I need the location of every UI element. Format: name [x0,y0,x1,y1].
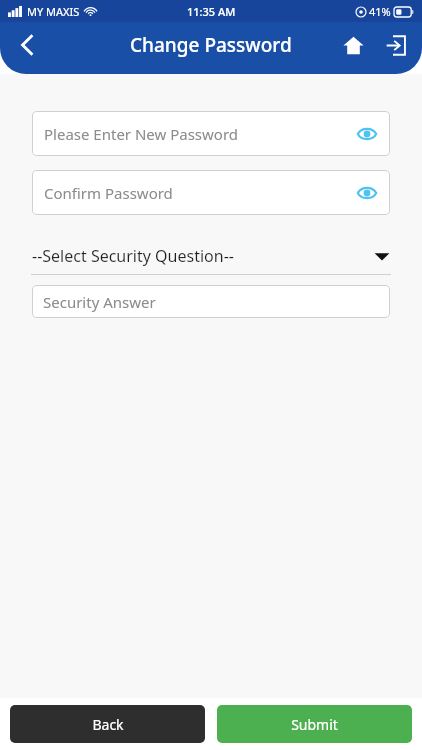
staticText: Confirm Password [44,183,173,203]
staticText: Change Password [130,32,292,58]
button[interactable]: Please Enter New Password [32,111,390,156]
button[interactable]: Logout [376,26,414,64]
staticText: MY MAXIS [27,4,80,19]
button[interactable]: Back [10,705,205,743]
button[interactable]: Home [334,26,372,64]
button[interactable]: Back [6,24,48,66]
button[interactable]: Submit [217,705,412,743]
button[interactable]: Confirm Password [32,170,390,215]
staticText: 11:35 AM [187,4,236,19]
staticText: Security Answer [43,292,156,312]
button[interactable]: Show password [354,121,380,147]
staticText: Please Enter New Password [44,124,239,144]
button[interactable]: Show password [354,180,380,206]
button[interactable]: Security Answer [32,285,390,318]
staticText: --Select Security Question-- [32,245,234,267]
staticText: Back [92,715,124,734]
staticText: Submit [291,715,338,734]
staticText: 41% [369,4,391,19]
button[interactable]: --Select Security Question-- [32,238,390,274]
